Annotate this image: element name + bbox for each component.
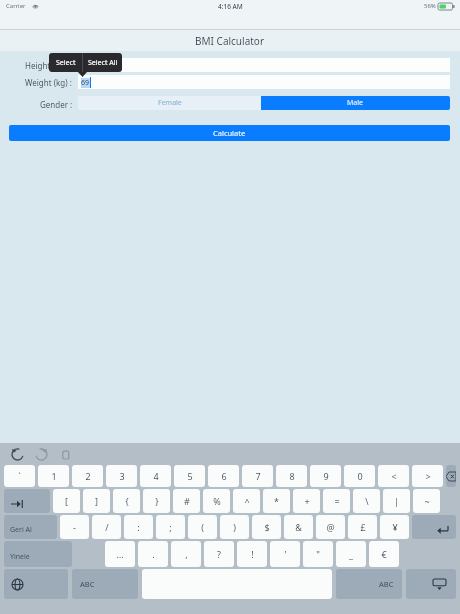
- button[interactable]: [78, 58, 450, 72]
- button[interactable]: ~: [413, 489, 440, 513]
- button[interactable]: Female: [78, 96, 261, 110]
- button[interactable]: Select All: [83, 53, 122, 72]
- staticText: Select: [56, 58, 76, 68]
- button[interactable]: ,: [171, 541, 201, 567]
- button[interactable]: Backspace: [446, 465, 456, 487]
- button[interactable]: ABC: [72, 569, 138, 599]
- button[interactable]: Calculate: [9, 125, 450, 141]
- button[interactable]: =: [323, 489, 350, 513]
- button[interactable]: 9: [310, 465, 341, 487]
- staticText: ABC: [80, 579, 95, 589]
- button[interactable]: {: [113, 489, 140, 513]
- staticText: 7: [255, 470, 261, 482]
- button[interactable]: 3: [106, 465, 137, 487]
- button[interactable]: _: [336, 541, 366, 567]
- button[interactable]: \: [353, 489, 380, 513]
- staticText: ,: [185, 548, 188, 560]
- button[interactable]: Yinele: [4, 541, 72, 567]
- staticText: `: [18, 470, 21, 482]
- button[interactable]: 1: [38, 465, 69, 487]
- staticText: !: [251, 548, 254, 560]
- staticText: =: [334, 495, 340, 507]
- staticText: 8: [289, 470, 295, 482]
- button[interactable]: /: [92, 515, 121, 539]
- button[interactable]: 8: [276, 465, 307, 487]
- staticText: 9: [323, 470, 329, 482]
- staticText: .: [152, 548, 155, 560]
- button[interactable]: `: [4, 465, 35, 487]
- button[interactable]: (: [188, 515, 217, 539]
- button[interactable]: Paste: [57, 446, 74, 463]
- button[interactable]: %: [203, 489, 230, 513]
- staticText: 69: [81, 78, 90, 88]
- button[interactable]: ;: [156, 515, 185, 539]
- button[interactable]: 2: [72, 465, 103, 487]
- button[interactable]: 6: [208, 465, 239, 487]
- button[interactable]: @: [316, 515, 345, 539]
- button[interactable]: Tab: [4, 489, 50, 513]
- button[interactable]: Hide keyboard: [406, 569, 456, 599]
- button[interactable]: ": [303, 541, 333, 567]
- button[interactable]: Redo: [33, 446, 50, 463]
- staticText: 5: [187, 470, 193, 482]
- button[interactable]: |: [383, 489, 410, 513]
- button[interactable]: Change keyboard: [4, 569, 68, 599]
- button[interactable]: &: [284, 515, 313, 539]
- button[interactable]: Undo: [9, 446, 26, 463]
- button[interactable]: ?: [204, 541, 234, 567]
- button[interactable]: €: [369, 541, 399, 567]
- staticText: 4: [153, 470, 159, 482]
- button[interactable]: #: [173, 489, 200, 513]
- staticText: 6: [221, 470, 227, 482]
- staticText: $: [264, 521, 270, 533]
- staticText: 0: [357, 470, 363, 482]
- staticText: 2: [85, 470, 91, 482]
- button[interactable]: ): [220, 515, 249, 539]
- staticText: :: [137, 521, 140, 533]
- button[interactable]: ]: [83, 489, 110, 513]
- staticText: ^: [244, 495, 250, 507]
- button[interactable]: Select: [49, 53, 82, 72]
- button[interactable]: 69: [78, 75, 450, 89]
- staticText: {: [125, 495, 129, 507]
- staticText: ": [316, 548, 320, 560]
- button[interactable]: -: [60, 515, 89, 539]
- staticText: 4:16 AM: [218, 2, 243, 11]
- staticText: Weight (kg) :: [25, 77, 72, 88]
- staticText: Gender :: [40, 99, 73, 110]
- staticText: @: [326, 521, 335, 533]
- staticText: Yinele: [10, 552, 30, 562]
- staticText: £: [360, 521, 366, 533]
- button[interactable]: !: [237, 541, 267, 567]
- button[interactable]: ^: [233, 489, 260, 513]
- staticText: _: [349, 548, 353, 560]
- button[interactable]: ¥: [380, 515, 409, 539]
- staticText: (: [201, 521, 204, 533]
- button[interactable]: <: [378, 465, 409, 487]
- button[interactable]: +: [293, 489, 320, 513]
- button[interactable]: .: [138, 541, 168, 567]
- button[interactable]: }: [143, 489, 170, 513]
- button[interactable]: >: [412, 465, 443, 487]
- button[interactable]: £: [348, 515, 377, 539]
- staticText: €: [381, 548, 387, 560]
- button[interactable]: Return: [412, 515, 456, 539]
- staticText: Female: [158, 98, 182, 108]
- button[interactable]: $: [252, 515, 281, 539]
- button[interactable]: Male: [261, 96, 450, 110]
- button[interactable]: 0: [344, 465, 375, 487]
- button[interactable]: …: [105, 541, 135, 567]
- button[interactable]: *: [263, 489, 290, 513]
- button[interactable]: 4: [140, 465, 171, 487]
- staticText: }: [155, 495, 159, 507]
- button[interactable]: Geri Al: [4, 515, 57, 539]
- staticText: >: [425, 470, 431, 482]
- button[interactable]: :: [124, 515, 153, 539]
- staticText: #: [184, 495, 190, 507]
- button[interactable]: ABC: [336, 569, 402, 599]
- button[interactable]: 5: [174, 465, 205, 487]
- button[interactable]: [: [53, 489, 80, 513]
- button[interactable]: ': [270, 541, 300, 567]
- button[interactable]: 7: [242, 465, 273, 487]
